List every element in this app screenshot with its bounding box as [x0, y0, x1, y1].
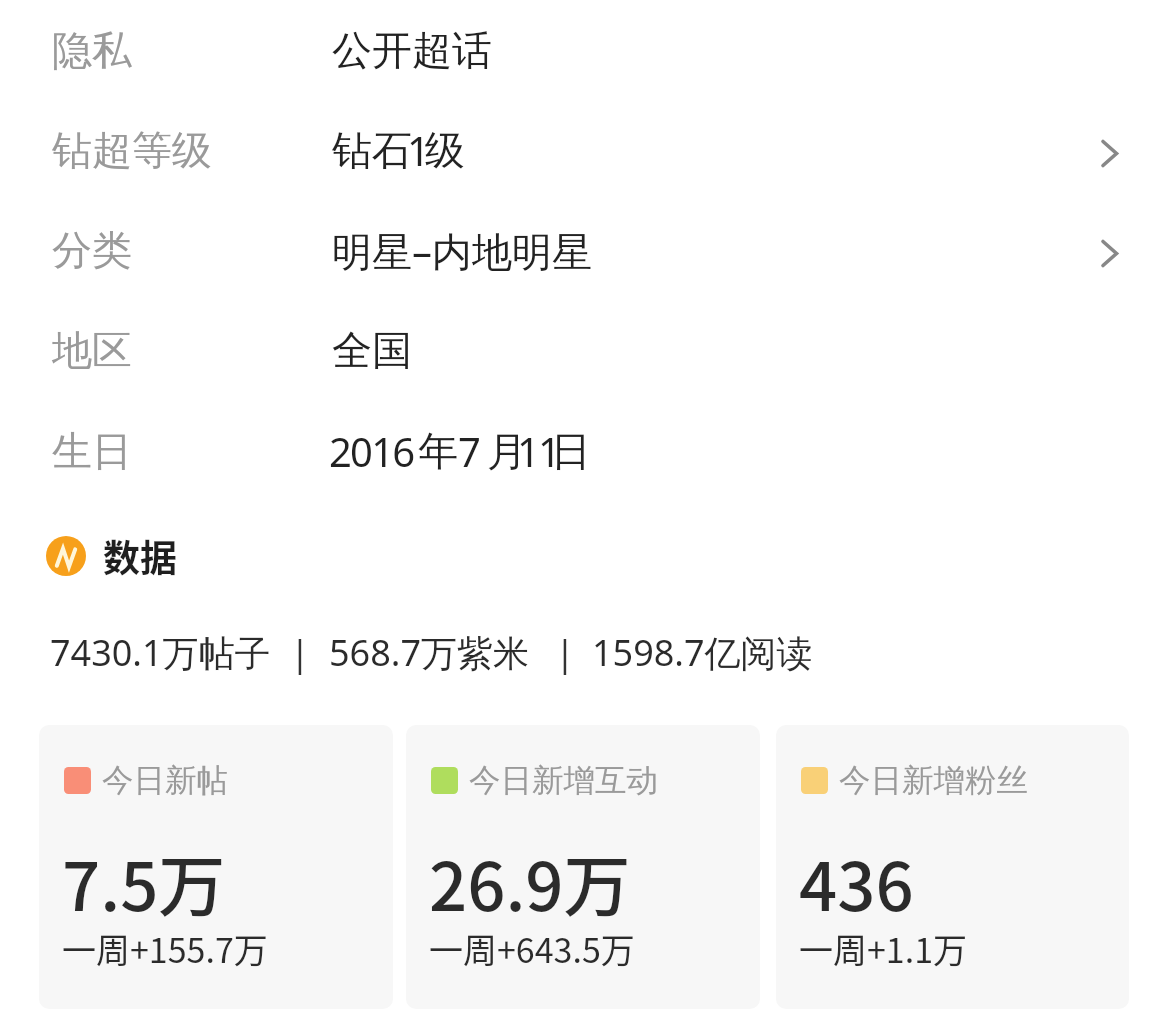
- button[interactable]: 今日新增粉丝: [776, 725, 1129, 1009]
- staticText: 钻超等级: [52, 125, 212, 175]
- staticText: 分类: [52, 225, 132, 275]
- staticText: 一周+155.7万: [62, 924, 268, 973]
- staticText: 隐私: [52, 25, 132, 75]
- other: Data: [46, 536, 86, 576]
- other: Open 分类: [1101, 240, 1118, 267]
- staticText: 一周+643.5万: [429, 924, 635, 973]
- staticText: 26.9万: [429, 833, 631, 930]
- staticText: 一周+1.1万: [799, 924, 968, 973]
- staticText: 7430.1万帖子: [50, 628, 271, 677]
- staticText: 1: [407, 123, 429, 177]
- staticText: 年: [418, 426, 458, 476]
- button[interactable]: 隐私: [0, 0, 1167, 100]
- staticText: 今日新增粉丝: [839, 761, 1028, 801]
- staticText: |: [555, 628, 575, 677]
- staticText: 2016: [329, 424, 414, 478]
- button[interactable]: 钻超等级: [0, 100, 1167, 200]
- staticText: 明星–内地明星: [332, 223, 592, 278]
- staticText: 地区: [52, 325, 132, 375]
- staticText: 436: [799, 833, 914, 930]
- staticText: 1598.7亿阅读: [592, 628, 813, 677]
- staticText: 公开超话: [332, 25, 492, 75]
- staticText: 月: [487, 426, 527, 476]
- button[interactable]: 分类: [0, 200, 1167, 300]
- button[interactable]: 今日新帖: [39, 725, 393, 1009]
- staticText: 7.5万: [62, 833, 226, 930]
- staticText: 568.7万紫米: [329, 628, 530, 677]
- button[interactable]: Data: [46, 529, 177, 583]
- button[interactable]: 地区: [0, 300, 1167, 400]
- staticText: 日: [551, 426, 591, 476]
- staticText: 11: [517, 424, 560, 478]
- button[interactable]: 生日: [0, 401, 1167, 501]
- staticText: 钻石: [332, 125, 412, 175]
- staticText: |: [290, 628, 310, 677]
- staticText: 级: [425, 125, 465, 175]
- staticText: 今日新帖: [102, 761, 228, 801]
- staticText: 全国: [332, 325, 412, 375]
- button[interactable]: 今日新增互动: [406, 725, 760, 1009]
- staticText: 生日: [52, 426, 132, 476]
- staticText: 7: [458, 424, 480, 478]
- staticText: 数据: [103, 529, 177, 583]
- other: Open 钻超等级: [1101, 140, 1118, 167]
- staticText: 今日新增互动: [469, 761, 658, 801]
